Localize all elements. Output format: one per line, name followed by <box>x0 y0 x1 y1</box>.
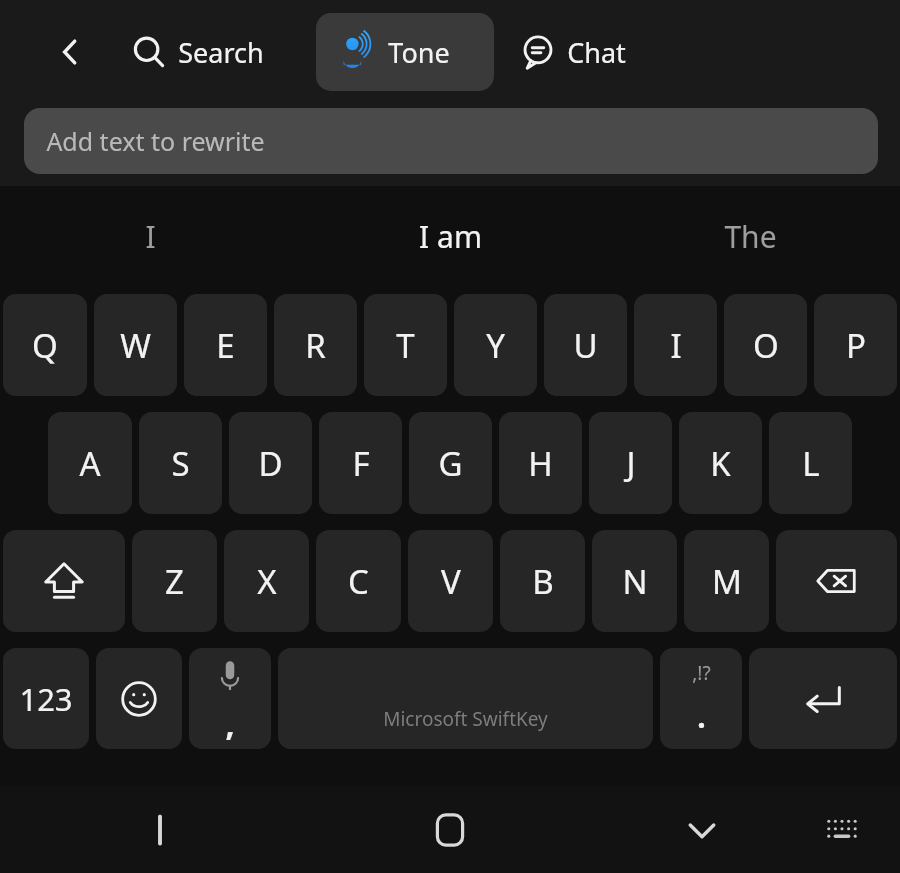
button[interactable]: A <box>48 412 132 514</box>
button[interactable]: Enter <box>749 648 897 749</box>
staticText: ,!? <box>692 660 711 686</box>
staticText: O <box>753 323 779 368</box>
staticText: E <box>216 323 235 368</box>
button[interactable]: D <box>229 412 312 514</box>
button[interactable]: W <box>94 294 177 396</box>
button[interactable]: Tone <box>316 13 494 91</box>
staticText: H <box>528 441 553 486</box>
button[interactable]: Add text to rewrite <box>24 108 878 174</box>
staticText: R <box>305 323 326 368</box>
button[interactable]: Backspace <box>776 530 897 632</box>
button[interactable]: U <box>544 294 627 396</box>
button[interactable]: R <box>274 294 357 396</box>
button[interactable]: P <box>814 294 897 396</box>
button[interactable]: I <box>634 294 717 396</box>
button[interactable]: L <box>769 412 852 514</box>
button[interactable]: ,!? <box>660 648 742 749</box>
button[interactable]: C <box>316 530 401 632</box>
staticText: L <box>802 441 820 486</box>
staticText: S <box>171 441 190 486</box>
button[interactable]: Shift <box>3 530 125 632</box>
button[interactable]: B <box>500 530 585 632</box>
button[interactable]: Back <box>40 22 100 82</box>
button[interactable]: Home <box>412 792 488 868</box>
staticText: T <box>396 323 415 368</box>
staticText: J <box>626 441 636 486</box>
button[interactable]: 123 <box>3 648 89 749</box>
staticText: M <box>712 559 742 604</box>
staticText: G <box>438 441 463 486</box>
button[interactable]: K <box>679 412 762 514</box>
staticText: Q <box>32 323 58 368</box>
staticText: Chat <box>567 34 626 71</box>
staticText: B <box>532 559 554 604</box>
staticText: U <box>573 323 598 368</box>
staticText: Add text to rewrite <box>46 124 265 158</box>
button[interactable]: I am <box>300 186 600 286</box>
button[interactable]: S <box>139 412 222 514</box>
button[interactable]: Switch keyboard <box>804 792 880 868</box>
button[interactable]: Search <box>128 20 268 84</box>
staticText: C <box>348 559 369 604</box>
button[interactable]: Microsoft SwiftKey <box>278 648 653 749</box>
staticText: Y <box>486 323 505 368</box>
staticText: P <box>846 323 866 368</box>
button[interactable]: J <box>589 412 672 514</box>
button[interactable]: I <box>0 186 300 286</box>
staticText: N <box>622 559 648 604</box>
button[interactable]: X <box>224 530 309 632</box>
button[interactable]: Q <box>3 294 87 396</box>
staticText: W <box>120 323 151 368</box>
staticText: I <box>145 216 156 257</box>
staticText: 123 <box>19 678 73 720</box>
button[interactable]: , <box>189 648 271 749</box>
staticText: I am <box>419 216 482 257</box>
button[interactable]: Hide keyboard <box>664 792 740 868</box>
staticText: K <box>710 441 731 486</box>
button[interactable]: V <box>408 530 493 632</box>
staticText: , <box>225 702 235 746</box>
staticText: Z <box>165 559 184 604</box>
button[interactable]: H <box>499 412 582 514</box>
button[interactable]: T <box>364 294 447 396</box>
staticText: V <box>441 559 461 604</box>
button[interactable]: G <box>409 412 492 514</box>
staticText: D <box>258 441 283 486</box>
button[interactable]: Emoji <box>96 648 182 749</box>
staticText: Search <box>178 34 264 71</box>
staticText: The <box>724 216 777 257</box>
button[interactable]: M <box>684 530 769 632</box>
button[interactable]: N <box>592 530 677 632</box>
button[interactable]: Chat <box>516 20 630 84</box>
staticText: Tone <box>388 34 450 71</box>
button[interactable]: F <box>319 412 402 514</box>
button[interactable]: O <box>724 294 807 396</box>
staticText: F <box>352 441 370 486</box>
staticText: X <box>257 559 277 604</box>
button[interactable]: E <box>184 294 267 396</box>
button[interactable]: The <box>600 186 900 286</box>
button[interactable]: Y <box>454 294 537 396</box>
staticText: Microsoft SwiftKey <box>383 706 548 732</box>
staticText: I <box>670 323 682 368</box>
staticText: . <box>697 696 706 737</box>
staticText: A <box>79 441 101 486</box>
button[interactable]: Z <box>132 530 217 632</box>
